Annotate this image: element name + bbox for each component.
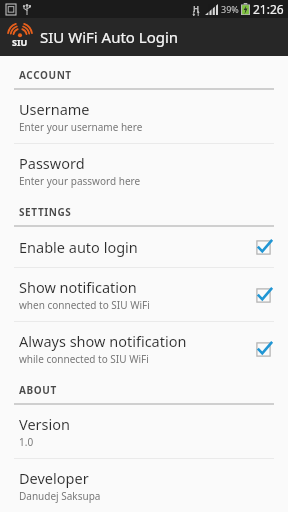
staticText: SETTINGS xyxy=(19,205,72,219)
staticText: ABOUT xyxy=(19,383,57,397)
staticText: H xyxy=(193,3,200,14)
button[interactable]: Toggle setting xyxy=(252,284,274,306)
button[interactable]: Version xyxy=(0,405,288,458)
staticText: while connected to SIU WiFi xyxy=(19,352,149,366)
staticText: Username xyxy=(19,99,90,119)
staticText: when connected to SIU WiFi xyxy=(19,298,150,312)
staticText: 21:26 xyxy=(253,1,284,17)
staticText: 1.0 xyxy=(19,435,34,449)
staticText: SIU xyxy=(12,36,28,48)
button[interactable]: Show notification xyxy=(0,268,288,321)
staticText: ACCOUNT xyxy=(19,68,72,82)
button[interactable]: Enable auto login xyxy=(0,227,288,267)
button[interactable]: SIU xyxy=(0,18,288,56)
staticText: Always show notification xyxy=(19,331,187,351)
staticText: Enter your password here xyxy=(19,174,141,188)
button[interactable]: Toggle setting xyxy=(252,338,274,360)
button[interactable]: Password xyxy=(0,144,288,197)
button[interactable]: Username xyxy=(0,90,288,143)
staticText: Enable auto login xyxy=(19,237,138,257)
button[interactable]: Toggle setting xyxy=(252,236,274,258)
staticText: 39% xyxy=(221,3,239,15)
staticText: SIU WiFi Auto Login xyxy=(40,27,179,47)
staticText: Developer xyxy=(19,468,89,488)
staticText: Version xyxy=(19,414,70,434)
staticText: Password xyxy=(19,153,85,173)
staticText: Enter your username here xyxy=(19,120,143,134)
staticText: Danudej Saksupa xyxy=(19,489,101,503)
staticText: Show notification xyxy=(19,277,137,297)
button[interactable]: Developer xyxy=(0,459,288,512)
button[interactable]: Always show notification xyxy=(0,322,288,375)
